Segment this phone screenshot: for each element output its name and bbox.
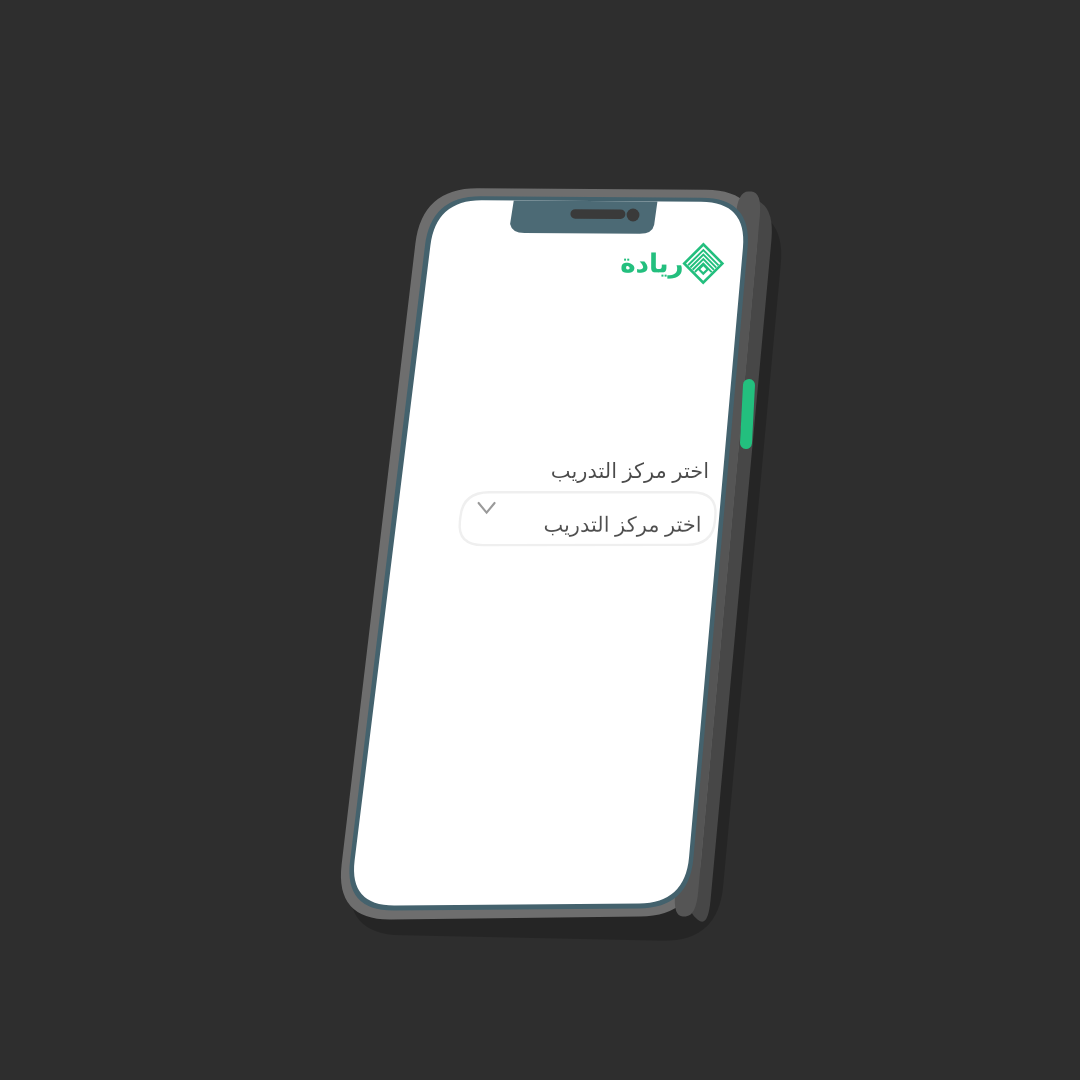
button[interactable]: اختر مركز التدريب [0,0,1080,1080]
